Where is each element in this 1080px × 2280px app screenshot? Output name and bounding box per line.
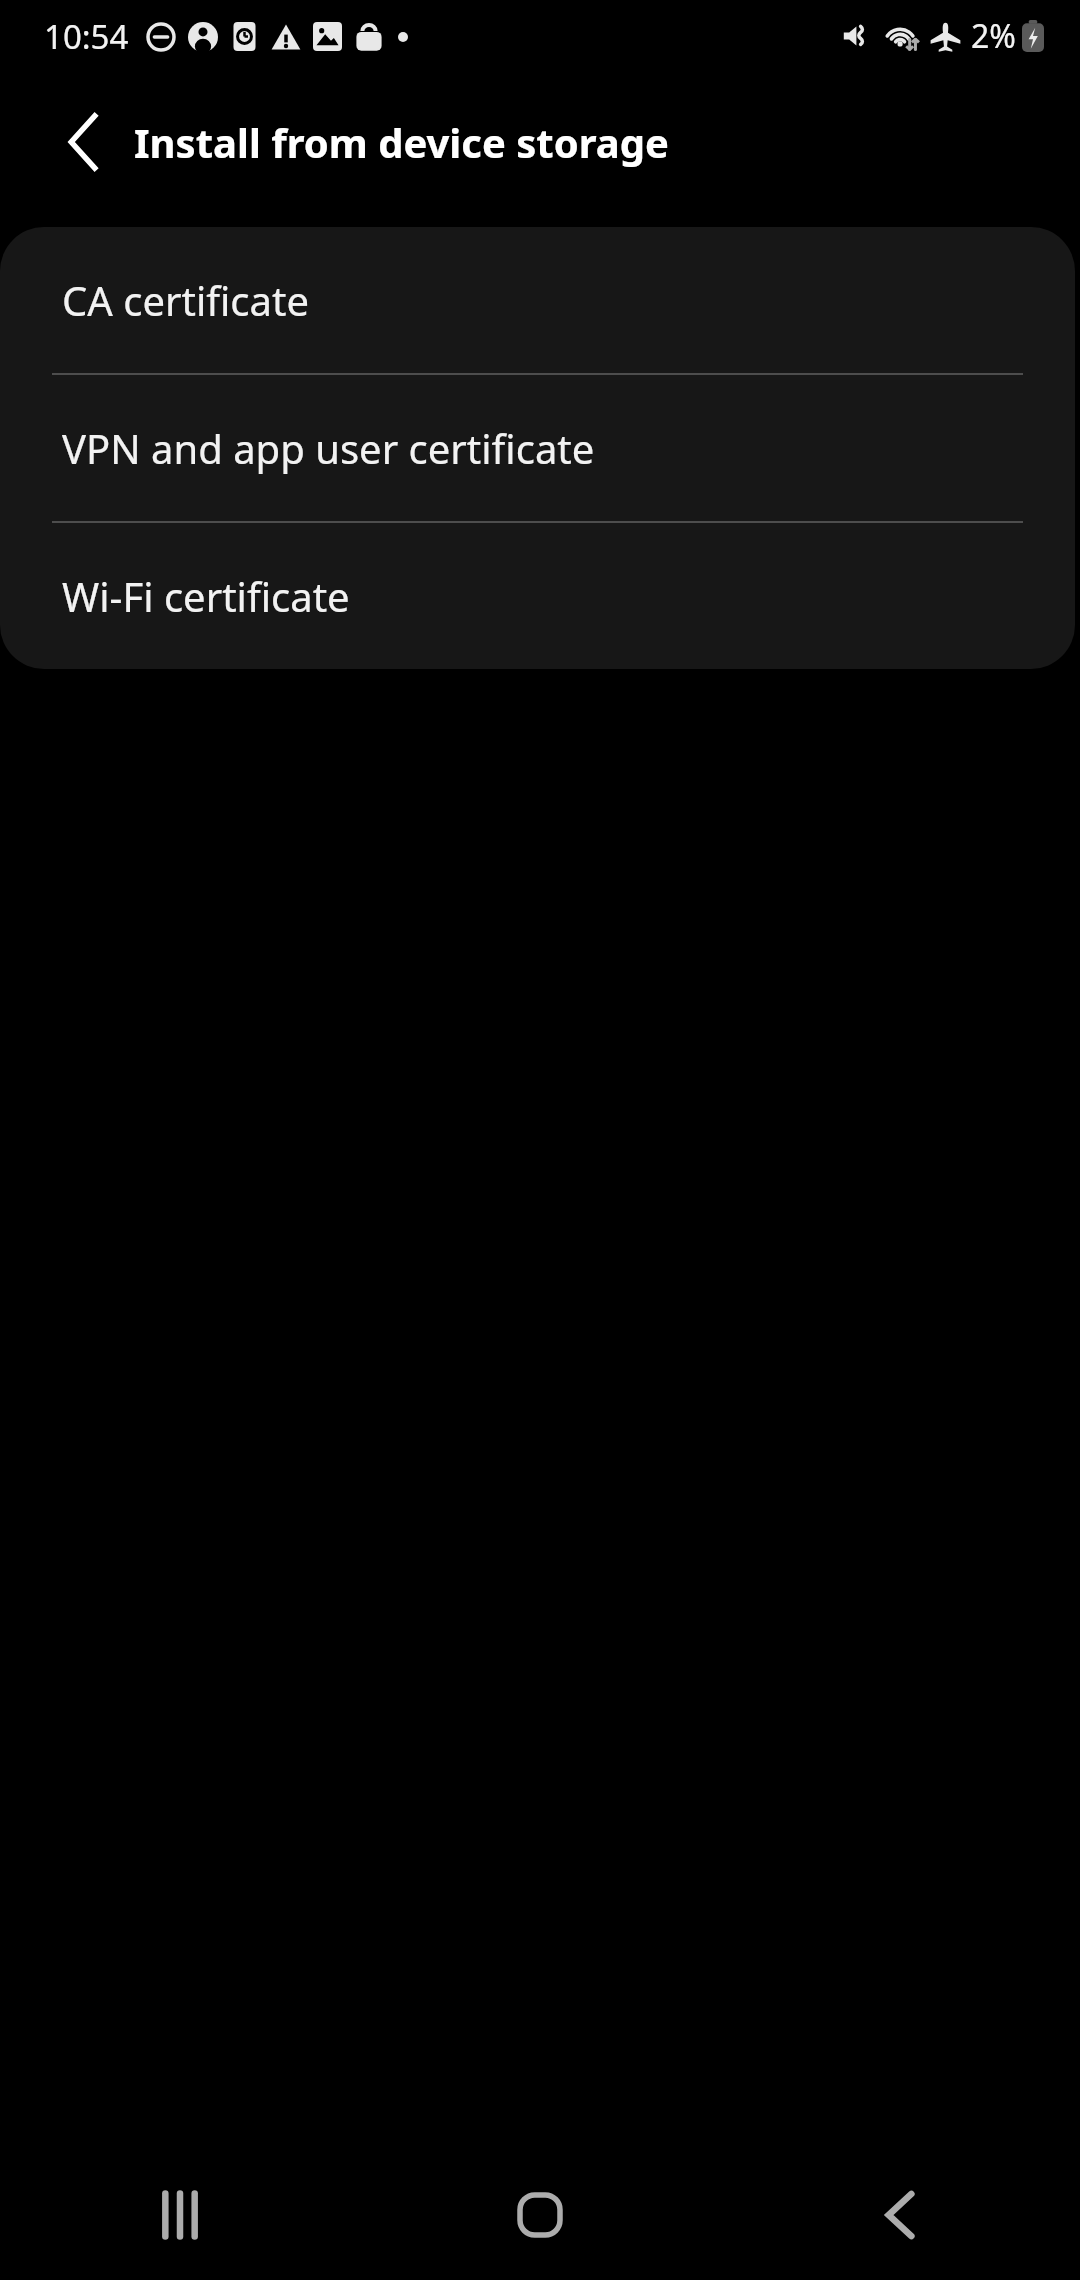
staticText: Wi-Fi certificate <box>62 569 350 623</box>
button[interactable]: Back <box>720 2150 1080 2280</box>
button[interactable]: Wi-Fi certificate <box>0 523 1075 669</box>
button[interactable]: VPN and app user certificate <box>0 375 1075 521</box>
staticText: Install from device storage <box>134 115 669 169</box>
staticText: 2% <box>971 14 1016 58</box>
staticText: VPN and app user certificate <box>62 421 595 475</box>
staticText: CA certificate <box>62 273 309 327</box>
button[interactable]: Home <box>360 2150 720 2280</box>
button[interactable]: Recent apps <box>0 2150 360 2280</box>
button[interactable]: CA certificate <box>0 227 1075 373</box>
button[interactable]: Back <box>34 93 132 191</box>
staticText: 10:54 <box>44 14 129 59</box>
